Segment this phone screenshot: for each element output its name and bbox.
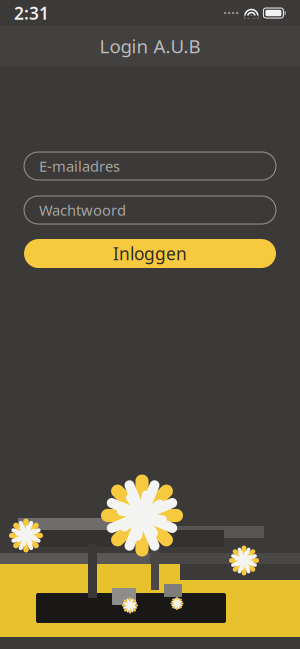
staticText: E-mailadres xyxy=(39,156,120,176)
staticText: Login A.U.B xyxy=(99,34,200,58)
button[interactable]: Inloggen xyxy=(24,239,276,268)
button[interactable]: Wachtwoord xyxy=(24,196,276,224)
button[interactable]: E-mailadres xyxy=(24,152,276,180)
staticText: 2:31 xyxy=(14,1,49,24)
staticText: Inloggen xyxy=(113,242,187,265)
staticText: Wachtwoord xyxy=(39,200,126,220)
